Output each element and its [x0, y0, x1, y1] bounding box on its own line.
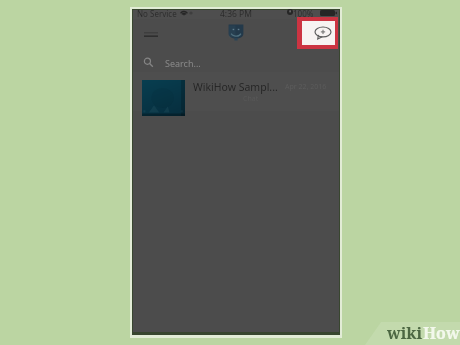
staticText: How: [423, 322, 460, 341]
button[interactable]: New chat: [302, 21, 335, 45]
staticText: 100%: [293, 8, 314, 19]
button[interactable]: WikiHow Sampl...: [133, 72, 339, 111]
staticText: wiki: [387, 322, 423, 341]
staticText: 4:36 PM: [220, 8, 252, 20]
button[interactable]: Search...: [133, 52, 339, 73]
staticText: Search...: [165, 57, 201, 69]
button[interactable]: Menu: [140, 28, 162, 40]
staticText: Apr 22, 2016: [285, 82, 327, 92]
staticText: No Service: [137, 8, 177, 19]
staticText: WikiHow Sampl...: [193, 80, 278, 94]
